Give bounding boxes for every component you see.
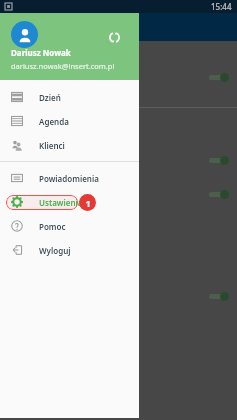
staticText: Zestawienie połączeń z ostatnich 30 dni: [8, 229, 229, 239]
staticText: Klienci: [39, 140, 65, 151]
staticText: Dariusz Nowak: [11, 47, 71, 58]
staticText: Nagrywanie połączeń: [8, 189, 207, 199]
staticText: Kontakty: [8, 72, 207, 82]
staticText: dariusz.nowak@insert.com.pl: [11, 61, 115, 71]
button[interactable]: Klienci: [0, 133, 139, 157]
staticText: Agenda: [39, 116, 69, 127]
button[interactable]: Agenda: [0, 109, 139, 133]
button[interactable]: Wyloguj: [0, 238, 139, 262]
staticText: Historia połączeń: [8, 155, 207, 165]
button[interactable]: Pomoc: [0, 214, 139, 238]
button[interactable]: Synchronizuj: [106, 29, 122, 45]
staticText: Synchronizacja: [8, 291, 207, 301]
button[interactable]: Powiadomienia: [0, 166, 139, 190]
staticText: Ustawienia: [39, 197, 83, 208]
button[interactable]: Dzień: [0, 85, 139, 109]
staticText: Dzień: [39, 92, 61, 103]
button[interactable]: Ustawienia: [0, 190, 139, 214]
staticText: 1: [85, 197, 91, 209]
staticText: Powiadomienia: [39, 173, 99, 184]
staticText: Pomoc: [39, 221, 66, 232]
staticText: Wyloguj: [39, 245, 71, 256]
staticText: 15:44: [211, 1, 232, 12]
